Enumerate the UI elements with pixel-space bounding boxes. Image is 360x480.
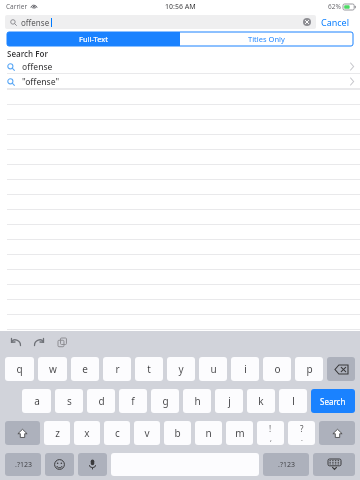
staticText: x [84,426,90,440]
button[interactable]: q [5,357,34,381]
staticText: z [55,426,60,440]
button[interactable]: f [119,389,147,413]
staticText: 62% [328,2,341,11]
staticText: b [174,426,181,440]
button[interactable]: y [167,357,195,381]
button[interactable]: x [74,421,100,445]
button[interactable]: p [295,357,323,381]
button[interactable]: Dictation [78,453,107,476]
button[interactable]: Shift [5,421,40,445]
staticText: Cancel [321,16,350,28]
staticText: i [244,362,247,376]
button[interactable]: e [71,357,99,381]
staticText: ! [269,423,272,434]
button[interactable]: ? [288,421,315,445]
button[interactable]: m [226,421,253,445]
staticText: k [258,394,264,408]
staticText: p [306,362,313,376]
button[interactable]: Hide keyboard [313,453,355,476]
staticText: Titles Only [248,34,285,44]
button[interactable]: Redo [31,334,47,350]
staticText: r [115,362,120,376]
staticText: o [274,362,281,376]
staticText: e [82,362,88,376]
staticText: 10:56 AM [165,2,196,12]
staticText: l [292,394,295,408]
button[interactable]: o [263,357,291,381]
staticText: Carrier [6,2,28,11]
button[interactable]: Titles Only [180,32,353,46]
button[interactable]: offense [0,59,360,74]
staticText: , [270,434,272,444]
staticText: v [144,426,150,440]
button[interactable]: .?123 [263,453,309,476]
button[interactable]: Search [311,389,355,413]
staticText: j [228,394,231,408]
button[interactable]: Clear text [303,18,311,26]
staticText: Search For [7,48,48,59]
button[interactable]: Paste [54,334,70,350]
staticText: q [16,362,23,376]
button[interactable]: w [38,357,67,381]
button[interactable]: offense [5,15,316,29]
button[interactable]: g [151,389,179,413]
button[interactable]: k [247,389,275,413]
staticText: c [115,426,120,440]
button[interactable]: Backspace [327,357,355,381]
button[interactable]: l [279,389,307,413]
button[interactable]: Undo [8,334,24,350]
button[interactable]: Emoji [45,453,74,476]
staticText: n [205,426,212,440]
staticText: offense [21,17,50,28]
staticText: .?123 [15,460,32,470]
staticText: Search [320,396,346,407]
staticText: offense [22,61,53,73]
button[interactable]: v [134,421,160,445]
button[interactable]: ! [257,421,284,445]
button[interactable]: n [195,421,222,445]
staticText: .?123 [278,460,295,470]
button[interactable]: u [199,357,227,381]
button[interactable]: "offense" [0,74,360,89]
button[interactable]: .?123 [5,453,41,476]
button[interactable]: h [183,389,211,413]
staticText: f [131,394,135,408]
staticText: a [34,394,40,408]
staticText: g [162,394,169,408]
button[interactable]: d [87,389,115,413]
staticText: Full-Text [79,34,108,44]
staticText: ? [300,423,304,434]
button[interactable]: t [135,357,163,381]
staticText: w [49,362,57,376]
staticText: s [67,394,72,408]
button[interactable]: Full-Text [7,32,180,46]
button[interactable]: c [104,421,130,445]
staticText: h [194,394,201,408]
staticText: . [301,434,303,444]
staticText: m [235,426,245,440]
staticText: "offense" [22,76,60,88]
button[interactable]: a [22,389,51,413]
staticText: d [98,394,105,408]
staticText: y [178,362,184,376]
button[interactable]: Cancel [316,14,355,30]
button[interactable]: s [55,389,83,413]
staticText: t [147,362,151,376]
button[interactable]: z [44,421,70,445]
staticText: u [210,362,217,376]
button[interactable]: r [103,357,131,381]
button[interactable]: j [215,389,243,413]
button[interactable]: b [164,421,191,445]
button[interactable]: i [231,357,259,381]
button[interactable]: Shift [319,421,355,445]
